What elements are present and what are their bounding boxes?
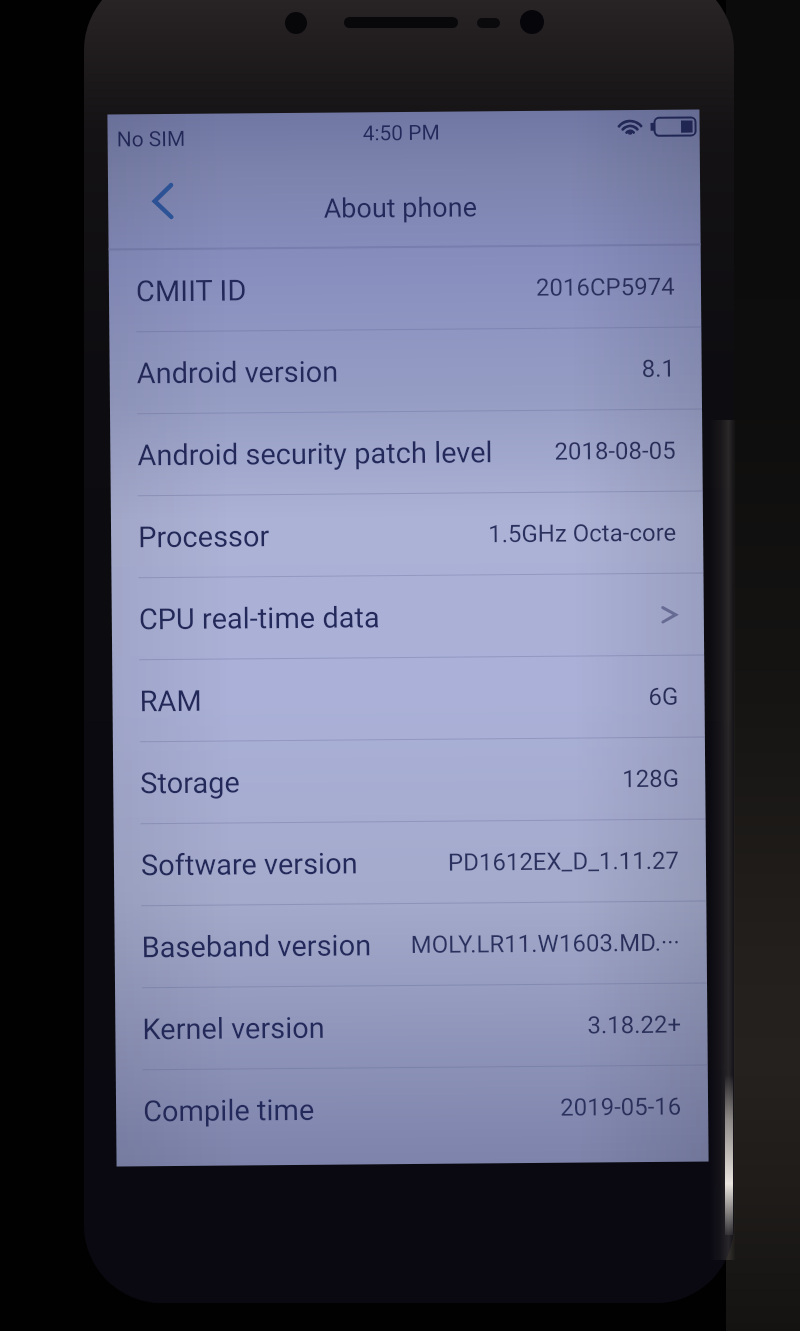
staticText: 2018-08-05 — [554, 437, 676, 466]
button[interactable]: Android security patch level — [110, 409, 703, 496]
staticText: 128G — [622, 765, 679, 793]
button[interactable]: CMIIT ID — [109, 245, 701, 332]
staticText: MOLY.LR11.W1603.MD.··· — [411, 929, 681, 959]
button[interactable]: Storage — [113, 737, 706, 824]
button[interactable]: Software version — [114, 819, 706, 906]
staticText: 2016CP5974 — [536, 273, 675, 302]
staticText: CMIIT ID — [136, 273, 247, 308]
staticText: Storage — [140, 765, 240, 800]
staticText: 3.18.22+ — [587, 1011, 681, 1039]
staticText: 1.5GHz Octa-core — [488, 519, 677, 548]
button[interactable]: Baseband version — [114, 901, 707, 988]
button[interactable]: Kernel version — [115, 983, 708, 1070]
button[interactable]: Compile time — [116, 1065, 708, 1152]
staticText: Android version — [136, 355, 339, 390]
staticText: CPU real-time data — [139, 600, 380, 636]
staticText: About phone — [323, 191, 477, 225]
staticText: RAM — [139, 684, 203, 718]
staticText: Kernel version — [142, 1011, 326, 1046]
staticText: Compile time — [143, 1093, 315, 1128]
staticText: Processor — [138, 519, 270, 554]
staticText: 2019-05-16 — [560, 1093, 682, 1122]
staticText: Android security patch level — [137, 435, 493, 472]
staticText: PD1612EX_D_1.11.27 — [448, 847, 680, 877]
button[interactable]: RAM — [112, 655, 705, 742]
staticText: 4:50 PM — [362, 121, 441, 146]
staticText: 8.1 — [641, 355, 676, 383]
staticText: Baseband version — [141, 928, 372, 964]
staticText: Software version — [141, 846, 358, 882]
button[interactable]: CPU real-time data — [111, 573, 704, 660]
button[interactable]: Processor — [111, 491, 703, 578]
button[interactable]: Back — [108, 172, 199, 249]
staticText: No SIM — [116, 127, 186, 152]
button[interactable]: Android version — [109, 327, 702, 414]
staticText: 6G — [648, 683, 679, 711]
